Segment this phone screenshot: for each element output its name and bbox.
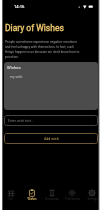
staticText: People sometimes experience negative emo… (5, 40, 99, 59)
button[interactable]: Settings (82, 186, 102, 201)
button[interactable]: Add wish (4, 133, 98, 144)
staticText: Preferences (65, 197, 80, 200)
staticText: Add wish (44, 137, 59, 141)
staticText: Wishes (7, 65, 21, 70)
staticText: Horoscope (45, 197, 59, 200)
staticText: 14:16 (14, 4, 25, 9)
staticText: Wishes (27, 197, 37, 200)
button[interactable]: Horoscope (42, 186, 62, 201)
button[interactable]: Life (0, 186, 21, 201)
staticText: Life (8, 197, 13, 200)
button[interactable]: Wishes (21, 186, 42, 201)
staticText: Settings (87, 197, 98, 200)
staticText: Diary of Wishes (5, 23, 64, 33)
button[interactable]: Preferences (62, 186, 82, 201)
button[interactable]: Enter wish text... (4, 115, 98, 126)
staticText: Enter wish text... (8, 119, 34, 123)
staticText: my wish (10, 75, 23, 79)
